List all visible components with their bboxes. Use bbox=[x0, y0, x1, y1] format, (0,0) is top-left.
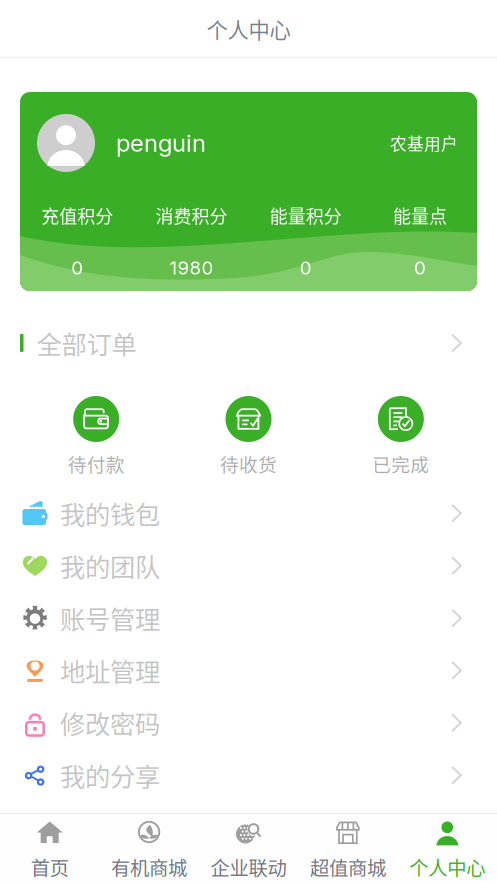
staticText: 个人中心 bbox=[206, 14, 290, 44]
button[interactable]: 我的分享 bbox=[0, 749, 497, 801]
button[interactable]: 个人中心 bbox=[398, 811, 497, 883]
staticText: 农基用户 bbox=[390, 131, 458, 155]
staticText: 首页 bbox=[31, 853, 69, 881]
staticText: 我的分享 bbox=[60, 757, 160, 794]
staticText: 我的团队 bbox=[60, 547, 160, 584]
staticText: 已完成 bbox=[372, 450, 429, 477]
staticText: 我的钱包 bbox=[60, 495, 160, 532]
staticText: 能量积分 bbox=[270, 202, 342, 228]
staticText: 修改密码 bbox=[60, 704, 160, 741]
staticText: 地址管理 bbox=[60, 652, 160, 689]
staticText: 超值商城 bbox=[310, 853, 386, 881]
staticText: 0 bbox=[300, 256, 312, 279]
staticText: 能量点 bbox=[393, 202, 447, 228]
button[interactable]: 地址管理 bbox=[0, 644, 497, 697]
button[interactable]: 我的钱包 bbox=[0, 487, 497, 539]
staticText: 全部订单 bbox=[36, 325, 136, 361]
button[interactable]: 企业联动 bbox=[199, 811, 298, 883]
button[interactable]: 超值商城 bbox=[298, 811, 398, 883]
button[interactable]: 全部订单 bbox=[0, 317, 497, 369]
button[interactable]: 有机商城 bbox=[99, 811, 199, 883]
staticText: 企业联动 bbox=[210, 853, 286, 881]
staticText: 0 bbox=[414, 256, 426, 279]
staticText: 账号管理 bbox=[60, 600, 160, 636]
button[interactable]: 已完成 bbox=[325, 390, 477, 483]
button[interactable]: 修改密码 bbox=[0, 697, 497, 749]
staticText: 待收货 bbox=[220, 450, 277, 477]
staticText: 待付款 bbox=[68, 450, 125, 477]
button[interactable]: 我的团队 bbox=[0, 539, 497, 592]
button[interactable]: 待收货 bbox=[172, 390, 325, 483]
staticText: penguin bbox=[116, 128, 206, 157]
staticText: 充值积分 bbox=[41, 202, 113, 228]
button[interactable]: 账号管理 bbox=[0, 592, 497, 644]
button[interactable]: 首页 bbox=[0, 811, 99, 883]
staticText: 个人中心 bbox=[409, 853, 485, 881]
staticText: 0 bbox=[71, 256, 83, 279]
staticText: 1980 bbox=[169, 256, 213, 279]
staticText: 有机商城 bbox=[111, 853, 187, 881]
staticText: 消费积分 bbox=[155, 202, 227, 228]
button[interactable]: 待付款 bbox=[20, 390, 172, 483]
